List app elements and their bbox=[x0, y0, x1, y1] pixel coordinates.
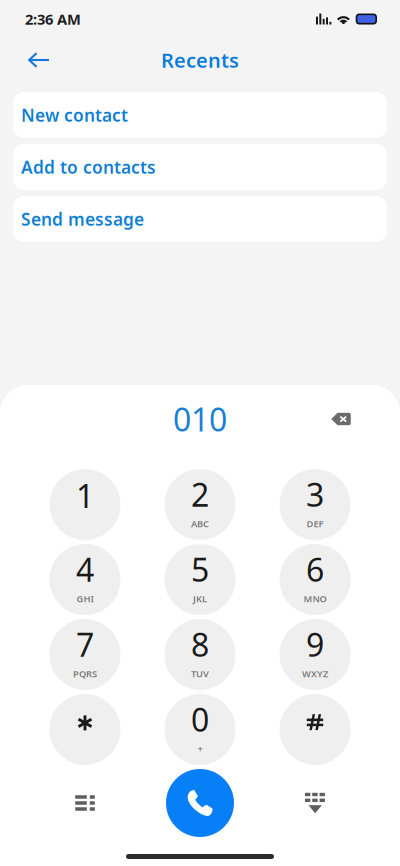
staticText: Recents bbox=[161, 47, 239, 73]
button[interactable]: 7 bbox=[49, 619, 120, 690]
staticText: Add to contacts bbox=[21, 155, 156, 178]
staticText: 3 bbox=[306, 473, 324, 516]
staticText: JKL bbox=[193, 593, 207, 605]
staticText: MNO bbox=[303, 593, 326, 605]
button[interactable]: 5 bbox=[164, 544, 235, 615]
staticText: 7 bbox=[76, 623, 94, 666]
button[interactable]: 2 bbox=[164, 469, 235, 540]
button[interactable]: Call log bbox=[53, 769, 117, 837]
staticText: 2 bbox=[191, 473, 209, 516]
staticText: 1 bbox=[76, 474, 94, 517]
staticText: 9 bbox=[306, 623, 324, 666]
staticText: 4 bbox=[76, 548, 94, 591]
staticText: TUV bbox=[191, 668, 209, 680]
button[interactable]: 1 bbox=[49, 469, 120, 540]
button[interactable]: Add to contacts bbox=[13, 144, 387, 190]
staticText: 5 bbox=[191, 548, 209, 591]
staticText: 6 bbox=[306, 548, 324, 591]
button[interactable]: Back bbox=[17, 40, 61, 80]
staticText: 0 bbox=[191, 698, 209, 741]
button[interactable] bbox=[49, 694, 120, 765]
button[interactable]: 8 bbox=[164, 619, 235, 690]
staticText: Send message bbox=[21, 207, 144, 230]
staticText: WXYZ bbox=[302, 668, 328, 680]
staticText: New contact bbox=[21, 103, 128, 126]
button[interactable]: Send message bbox=[13, 196, 387, 242]
staticText: PQRS bbox=[73, 668, 97, 680]
button[interactable]: 4 bbox=[49, 544, 120, 615]
button[interactable]: Call bbox=[166, 769, 234, 837]
staticText: ABC bbox=[191, 518, 209, 530]
button[interactable]: New contact bbox=[13, 92, 387, 138]
button[interactable]: 9 bbox=[279, 619, 350, 690]
staticText: 010 bbox=[173, 398, 227, 440]
button[interactable] bbox=[279, 694, 350, 765]
staticText: DEF bbox=[306, 518, 323, 530]
button[interactable]: 6 bbox=[279, 544, 350, 615]
staticText: GHI bbox=[76, 593, 93, 605]
button[interactable]: Hide keypad bbox=[283, 769, 347, 837]
staticText: 2:36 AM bbox=[25, 9, 81, 29]
button[interactable]: 3 bbox=[279, 469, 350, 540]
staticText: 8 bbox=[191, 623, 209, 666]
button[interactable]: Delete bbox=[319, 400, 363, 438]
staticText: + bbox=[197, 743, 202, 755]
button[interactable]: 0 bbox=[164, 694, 235, 765]
